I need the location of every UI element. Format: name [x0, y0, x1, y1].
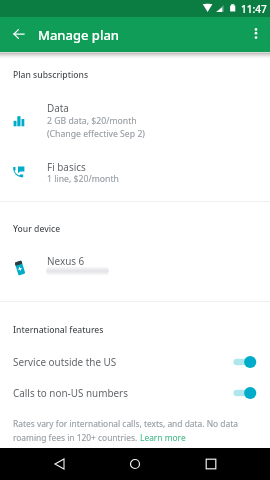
button[interactable]: Back: [44, 448, 76, 480]
staticText: Fi basics: [47, 160, 86, 173]
staticText: 11:47: [241, 2, 267, 16]
staticText: 2 GB data, $20/month: [47, 115, 137, 127]
button[interactable]: Nexus 6: [0, 246, 270, 282]
button[interactable]: Data: [0, 92, 270, 143]
button[interactable]: Navigate up: [5, 20, 33, 48]
button[interactable]: Calls to non-US numbers: [0, 379, 270, 407]
button[interactable]: Service outside the US: [0, 348, 270, 376]
staticText: Learn more: [140, 432, 186, 443]
staticText: Service outside the US: [13, 355, 117, 368]
button[interactable]: Home: [119, 448, 151, 480]
staticText: Rates vary for international calls, text…: [13, 418, 238, 429]
staticText: Your device: [13, 223, 61, 235]
button[interactable]: Learn more: [140, 430, 186, 441]
button[interactable]: More options: [242, 20, 270, 48]
staticText: (Change effective Sep 2): [47, 128, 145, 140]
staticText: 1 line, $20/month: [47, 173, 119, 185]
staticText: Nexus 6: [47, 254, 85, 267]
staticText: Manage plan: [38, 26, 120, 44]
button[interactable]: Recent apps: [195, 448, 227, 480]
staticText: Data: [47, 101, 69, 114]
staticText: roaming fees in 120+ countries.: [13, 432, 140, 443]
staticText: International features: [13, 324, 104, 336]
button[interactable]: Fi basics: [0, 155, 270, 189]
staticText: Calls to non-US numbers: [13, 386, 128, 399]
staticText: Plan subscriptions: [13, 69, 89, 81]
